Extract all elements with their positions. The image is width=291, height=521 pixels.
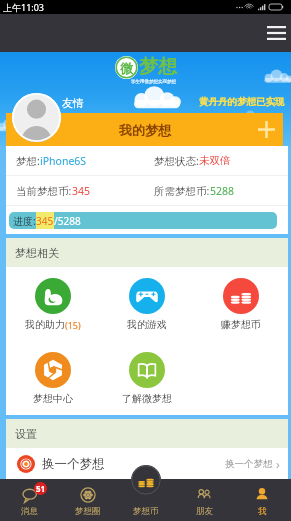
staticText: 进度: [13, 214, 36, 228]
staticText: (15) [65, 319, 81, 331]
staticText: 51 [36, 483, 46, 494]
staticText: 学生用微梦想实现梦想 [131, 79, 176, 85]
staticText: › [276, 456, 280, 472]
staticText: 黄丹丹的梦想已实现 [199, 96, 285, 108]
button[interactable]: 朋友 [175, 479, 233, 521]
button[interactable]: Add dream [258, 121, 275, 138]
button[interactable]: 换一个梦想 [6, 448, 288, 479]
staticText: 梦想 [139, 55, 177, 79]
staticText: 5288 [210, 184, 235, 198]
staticText: 我的梦想 [119, 122, 171, 138]
button[interactable]: Menu [262, 19, 290, 47]
staticText: 所需梦想币: [154, 184, 210, 198]
staticText: 梦想中心 [33, 392, 73, 405]
staticText: iPhone6S [40, 154, 87, 168]
staticText: 换一个梦想 [42, 456, 105, 472]
staticText: 我 [258, 506, 267, 517]
staticText: 换一个梦想 [225, 458, 273, 470]
staticText: /5288 [54, 214, 81, 228]
button[interactable]: 我的助力 [6, 267, 100, 341]
button[interactable]: 了解微梦想 [100, 341, 194, 415]
staticText: 梦想币 [133, 506, 159, 517]
staticText: 了解微梦想 [122, 392, 172, 405]
button[interactable]: 梦想中心 [6, 341, 100, 415]
button[interactable]: 梦想币 [117, 479, 175, 521]
staticText: 梦想相关 [15, 246, 59, 260]
button[interactable]: 梦想圈 [59, 479, 117, 521]
button[interactable]: Dream coins [131, 465, 161, 495]
button[interactable]: 赚梦想币 [194, 267, 288, 341]
staticText: 友情 [62, 96, 84, 110]
staticText: 赚梦想币 [221, 318, 261, 331]
staticText: 上午11:03 [3, 1, 45, 13]
button[interactable]: 我 [233, 479, 291, 521]
staticText: 当前梦想币: [16, 184, 72, 198]
staticText: 消息 [21, 506, 38, 517]
staticText: 梦想状态: [154, 154, 199, 168]
staticText: 梦想: [16, 154, 40, 168]
button[interactable]: 51 [0, 479, 59, 521]
staticText: 朋友 [196, 506, 213, 517]
staticText: 未双倍 [199, 154, 231, 167]
staticText: 我的游戏 [127, 318, 167, 331]
staticText: 设置 [15, 427, 37, 441]
staticText: 我的助力 [25, 318, 65, 331]
button[interactable]: Avatar [12, 93, 61, 142]
staticText: 微 [120, 60, 133, 76]
staticText: 345 [36, 214, 54, 228]
staticText: 梦想圈 [75, 506, 101, 517]
button[interactable]: 我的游戏 [100, 267, 194, 341]
staticText: 345 [72, 184, 91, 198]
